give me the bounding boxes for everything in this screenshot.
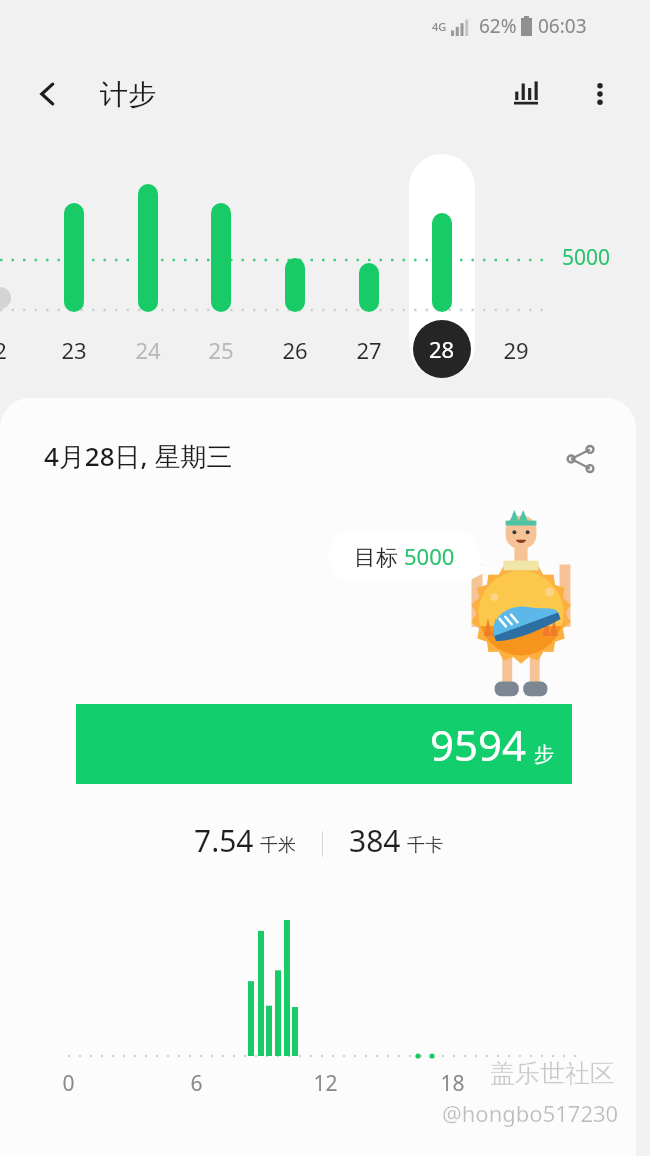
staticText: 62% bbox=[479, 13, 517, 39]
staticText: 步 bbox=[534, 742, 554, 767]
staticText: 5000 bbox=[404, 541, 455, 571]
staticText: 0 bbox=[62, 1069, 75, 1098]
staticText: 2 bbox=[0, 335, 7, 365]
staticText: 12 bbox=[313, 1069, 338, 1098]
button[interactable]: Back bbox=[22, 68, 74, 120]
button[interactable]: 29 bbox=[486, 330, 546, 370]
button[interactable]: 27 bbox=[339, 330, 399, 370]
staticText: 29 bbox=[503, 335, 529, 365]
staticText: 24 bbox=[135, 335, 161, 365]
staticText: 06:03 bbox=[538, 13, 587, 39]
staticText: 千卡 bbox=[407, 834, 443, 857]
staticText: 4G bbox=[432, 19, 447, 34]
button[interactable]: Share bbox=[552, 430, 610, 488]
button[interactable]: More options bbox=[574, 68, 626, 120]
staticText: 25 bbox=[208, 335, 234, 365]
staticText: 5000 bbox=[562, 243, 611, 272]
staticText: @hongbo517230 bbox=[442, 1098, 619, 1128]
staticText: 目标 bbox=[354, 541, 404, 571]
staticText: 27 bbox=[356, 335, 382, 365]
button[interactable]: 28 bbox=[413, 320, 471, 378]
button[interactable]: Chart bbox=[500, 68, 552, 120]
staticText: 千米 bbox=[260, 834, 296, 857]
staticText: 计步 bbox=[100, 77, 156, 112]
staticText: 384 bbox=[349, 820, 401, 861]
staticText: 盖乐世社区 bbox=[490, 1058, 615, 1089]
staticText: 28 bbox=[429, 334, 455, 364]
button[interactable]: 9594 bbox=[76, 704, 572, 784]
button[interactable]: 26 bbox=[265, 330, 325, 370]
staticText: 23 bbox=[61, 335, 87, 365]
staticText: 18 bbox=[440, 1069, 465, 1098]
button[interactable]: 2 bbox=[0, 330, 30, 370]
staticText: 4月28日, 星期三 bbox=[44, 438, 233, 474]
button[interactable]: 23 bbox=[44, 330, 104, 370]
button[interactable] bbox=[409, 154, 475, 378]
staticText: 9594 bbox=[430, 716, 527, 773]
button[interactable]: 24 bbox=[118, 330, 178, 370]
staticText: 6 bbox=[190, 1069, 203, 1098]
staticText: 7.54 bbox=[194, 820, 254, 861]
staticText: 26 bbox=[282, 335, 308, 365]
button[interactable]: 25 bbox=[191, 330, 251, 370]
